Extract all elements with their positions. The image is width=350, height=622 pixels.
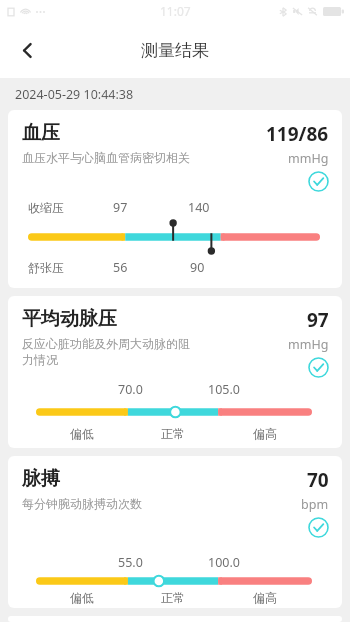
staticText: 偏高 — [253, 590, 277, 605]
staticText: 100.0 — [208, 554, 240, 571]
staticText: 56 — [113, 259, 128, 276]
staticText: 97 — [307, 307, 329, 333]
staticText: 血压 — [22, 121, 60, 145]
button[interactable]: 血压 — [8, 110, 342, 288]
staticText: 偏高 — [253, 426, 277, 441]
staticText: 反应心脏功能及外周大动脉的阻 力情况 — [22, 336, 190, 368]
staticText: 105.0 — [208, 381, 240, 398]
staticText: 收缩压 — [28, 200, 64, 215]
staticText: 每分钟腕动脉搏动次数 — [22, 496, 142, 511]
staticText: 正常 — [161, 590, 185, 605]
staticText: 119/86 — [266, 121, 329, 147]
staticText: 2024-05-29 10:44:38 — [15, 86, 134, 103]
staticText: 偏低 — [70, 590, 94, 605]
staticText: 脉搏 — [22, 467, 60, 491]
button[interactable]: 脉搏 — [8, 456, 342, 608]
staticText: 55.0 — [118, 554, 143, 571]
staticText: mmHg — [288, 150, 329, 167]
staticText: 70 — [307, 467, 329, 493]
staticText: mmHg — [288, 336, 329, 353]
button[interactable]: Back — [6, 29, 48, 71]
staticText: bpm — [301, 496, 329, 513]
staticText: 正常 — [161, 426, 185, 441]
button[interactable]: 平均动脉压 — [8, 296, 342, 448]
staticText: 97 — [113, 199, 128, 216]
staticText: 测量结果 — [141, 40, 209, 61]
staticText: 90 — [190, 259, 205, 276]
staticText: 平均动脉压 — [22, 307, 117, 331]
staticText: 偏低 — [70, 426, 94, 441]
staticText: 140 — [188, 199, 210, 216]
staticText: 70.0 — [118, 381, 143, 398]
staticText: 舒张压 — [28, 260, 64, 275]
staticText: 11:07 — [160, 3, 191, 19]
staticText: 血压水平与心脑血管病密切相关 — [22, 150, 190, 165]
